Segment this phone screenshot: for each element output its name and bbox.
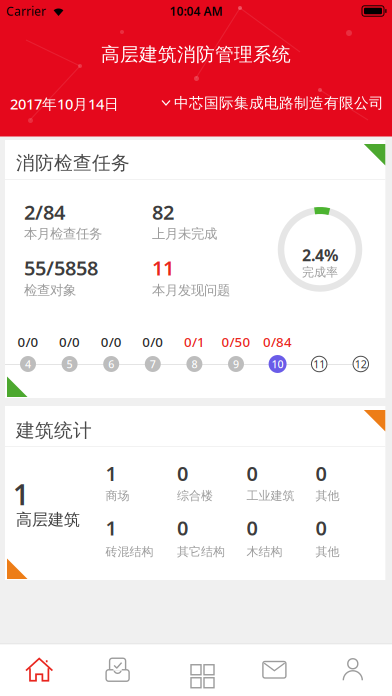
staticText: 检查对象: [24, 282, 76, 298]
staticText: 0: [315, 514, 326, 541]
staticText: 1: [13, 476, 29, 513]
staticText: 9: [233, 357, 239, 371]
staticText: 其它结构: [177, 544, 225, 559]
staticText: 上月未完成: [152, 225, 217, 242]
button[interactable]: 中芯国际集成电路制造有限公司: [161, 94, 384, 112]
button[interactable]: 9: [226, 354, 245, 373]
staticText: 2/84: [24, 199, 65, 225]
staticText: 其他: [315, 544, 339, 559]
staticText: 高层建筑: [16, 510, 80, 529]
staticText: 10:04 AM: [169, 3, 222, 19]
button[interactable]: 10: [268, 354, 287, 373]
staticText: 0: [177, 514, 188, 541]
button[interactable]: 4: [18, 354, 37, 373]
button[interactable]: 首页: [0, 643, 78, 696]
staticText: 本月发现问题: [152, 282, 230, 298]
staticText: 0/0: [17, 333, 38, 351]
staticText: 8: [191, 357, 197, 371]
staticText: 0/0: [59, 333, 80, 351]
staticText: 11: [152, 254, 174, 281]
staticText: 0/84: [263, 333, 292, 351]
staticText: 木结构: [246, 544, 282, 559]
staticText: 5: [67, 357, 73, 371]
staticText: 高层建筑消防管理系统: [101, 43, 291, 66]
staticText: 本月检查任务: [24, 225, 102, 242]
staticText: 工业建筑: [246, 488, 294, 503]
staticText: 0: [246, 514, 257, 541]
staticText: Carrier: [6, 3, 46, 19]
staticText: 中芯国际集成电路制造有限公司: [174, 94, 384, 112]
staticText: 建筑统计: [16, 419, 92, 442]
staticText: 商场: [105, 488, 129, 503]
button[interactable]: 6: [102, 354, 121, 373]
button[interactable]: 12: [351, 354, 370, 373]
staticText: 11: [313, 357, 325, 371]
staticText: 0: [246, 460, 257, 487]
staticText: 12: [355, 357, 367, 371]
button[interactable]: 11: [310, 354, 329, 373]
staticText: 0/0: [101, 333, 122, 351]
staticText: 0/1: [184, 333, 205, 351]
staticText: 1: [105, 460, 116, 487]
button[interactable]: 应用: [157, 643, 235, 696]
staticText: 1: [105, 514, 116, 541]
staticText: 砖混结构: [105, 544, 153, 559]
staticText: 2017年10月14日: [10, 94, 119, 113]
staticText: 7: [150, 357, 156, 371]
staticText: 6: [108, 357, 114, 371]
staticText: 完成率: [302, 265, 338, 280]
staticText: 消防检查任务: [16, 151, 130, 174]
staticText: 82: [152, 199, 174, 225]
staticText: 0: [177, 460, 188, 487]
staticText: 0: [315, 460, 326, 487]
button[interactable]: 我的: [314, 643, 392, 696]
button[interactable]: 5: [60, 354, 79, 373]
staticText: 10: [272, 357, 284, 371]
button[interactable]: 任务: [78, 643, 157, 696]
staticText: 2.4%: [302, 244, 338, 266]
button[interactable]: 消息: [235, 643, 314, 696]
staticText: 55/5858: [24, 254, 98, 281]
staticText: 其他: [315, 488, 339, 503]
staticText: 4: [25, 357, 31, 371]
button[interactable]: 7: [143, 354, 162, 373]
button[interactable]: 8: [185, 354, 204, 373]
staticText: 0/0: [142, 333, 163, 351]
staticText: 综合楼: [177, 488, 213, 503]
staticText: 0/50: [221, 333, 250, 351]
